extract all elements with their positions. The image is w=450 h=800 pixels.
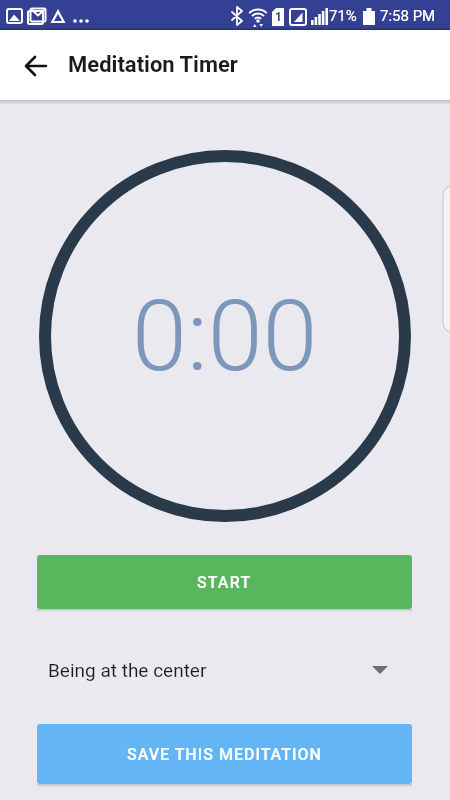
staticText: 0:00 xyxy=(132,278,318,394)
button[interactable]: START xyxy=(37,555,412,609)
button[interactable]: Being at the center xyxy=(37,645,412,695)
staticText: Being at the center xyxy=(48,659,207,681)
button[interactable]: SAVE THIS MEDITATION xyxy=(37,724,412,784)
staticText: 1 xyxy=(275,10,282,24)
staticText: Meditation Timer xyxy=(68,52,238,78)
staticText: SAVE THIS MEDITATION xyxy=(127,745,322,764)
staticText: 7:58 PM xyxy=(380,7,436,25)
staticText: START xyxy=(197,573,252,592)
button[interactable] xyxy=(14,44,58,88)
staticText: 71% xyxy=(329,7,357,25)
